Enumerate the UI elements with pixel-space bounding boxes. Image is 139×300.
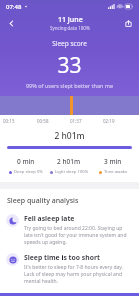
- staticText: Light sleep 100%: [55, 169, 89, 175]
- staticText: Try going to bed around 22:00. Staying u…: [24, 225, 131, 246]
- staticText: Sleep score: [0, 39, 139, 48]
- staticText: 00:58: [37, 118, 70, 124]
- staticText: 99% of users slept better than me: [0, 82, 139, 89]
- staticText: 2 h01m: [57, 157, 81, 166]
- staticText: Sleep quality analysis: [7, 196, 79, 206]
- staticText: 3 min: [104, 157, 122, 166]
- staticText: Syncing data 100%: [50, 25, 90, 31]
- staticText: 02:19: [103, 118, 136, 124]
- button[interactable]: Back: [2, 14, 20, 32]
- staticText: Deep sleep 0%: [14, 169, 43, 175]
- staticText: 11 June: [58, 15, 83, 25]
- staticText: 2 h01m: [0, 130, 139, 142]
- staticText: 01:37: [70, 118, 103, 124]
- staticText: 0 min: [17, 157, 35, 166]
- button[interactable]: Share: [120, 15, 136, 31]
- staticText: 00:15: [3, 118, 37, 124]
- button[interactable]: Sleep time is too short: [0, 253, 139, 285]
- staticText: 07:48: [6, 3, 22, 11]
- staticText: Time awake: [104, 169, 128, 175]
- staticText: Fell asleep late: [24, 214, 75, 223]
- button[interactable]: Fell asleep late: [0, 214, 139, 246]
- staticText: Sleep time is too short: [24, 253, 100, 262]
- staticText: It's better to sleep for 7-8 hours every…: [24, 264, 131, 285]
- staticText: 33: [0, 51, 139, 80]
